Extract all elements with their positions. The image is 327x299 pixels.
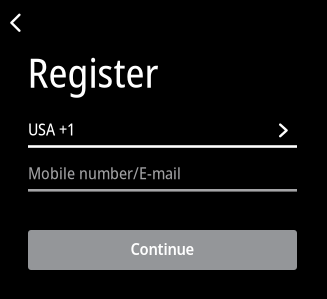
staticText: Register [27,45,158,99]
staticText: Continue [130,239,194,259]
staticText: USA +1 [28,119,75,140]
staticText: Mobile number/E-mail [28,163,181,184]
button[interactable]: Back [0,0,42,46]
button[interactable]: USA +1 [28,118,297,149]
button[interactable]: Continue [28,230,297,270]
